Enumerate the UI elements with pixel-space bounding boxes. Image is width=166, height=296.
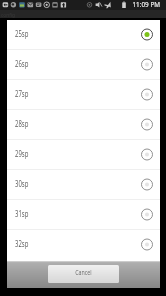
staticText: 11:09 PM [132,0,160,9]
button[interactable]: 25sp [7,20,160,49]
button[interactable]: 27sp [7,80,160,109]
staticText: Cancel [75,268,92,277]
button[interactable]: 31sp [7,200,160,229]
button[interactable]: 32sp [7,230,160,259]
button[interactable]: 29sp [7,140,160,169]
button[interactable]: 26sp [7,50,160,79]
staticText: 28sp [15,118,28,129]
staticText: 26sp [15,58,28,69]
staticText: 29sp [15,148,28,159]
staticText: 30sp [15,178,28,189]
staticText: 27sp [15,88,28,99]
staticText: 32sp [15,238,28,249]
staticText: 31sp [15,208,28,219]
staticText: 25sp [15,28,28,39]
staticText: config [1,11,15,19]
button[interactable]: 30sp [7,170,160,199]
button[interactable]: 28sp [7,110,160,139]
button[interactable]: Cancel [48,265,119,283]
